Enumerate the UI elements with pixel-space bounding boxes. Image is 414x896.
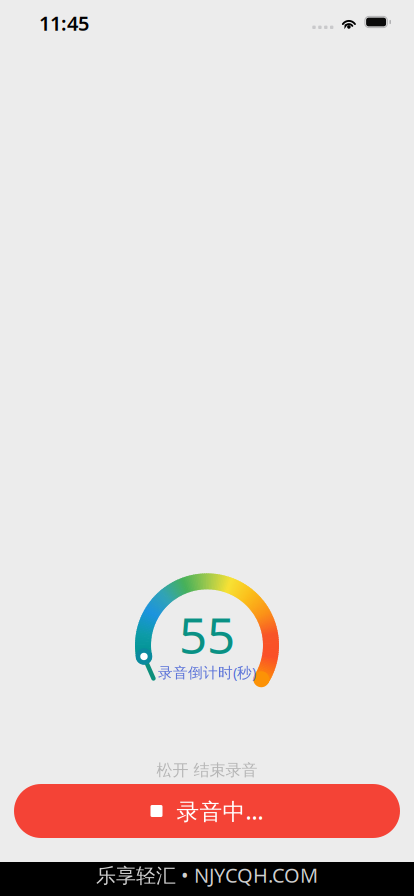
staticText: 乐享轻汇 • NJYCQH.COM [96,862,318,888]
staticText: 11:45 [39,10,89,36]
button[interactable]: 录音中... [14,784,400,838]
staticText: 录音中... [176,796,263,826]
staticText: 录音倒计时(秒) [158,663,256,682]
staticText: 松开 结束录音 [156,760,257,780]
staticText: 55 [179,602,235,667]
